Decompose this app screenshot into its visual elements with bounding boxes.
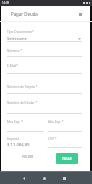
staticText: Año Exp. * — [48, 120, 64, 124]
staticText: Pagar Deuda — [11, 11, 38, 17]
staticText: Número * — [7, 49, 22, 53]
staticText: CVV * — [48, 137, 57, 141]
staticText: Importe — [7, 137, 20, 141]
staticText: Mes Exp. * — [7, 120, 23, 124]
staticText: E-Mail* — [7, 64, 18, 68]
staticText: Seleccione — [7, 36, 27, 41]
button[interactable]: PAGAR — [56, 153, 78, 164]
button[interactable] — [48, 136, 82, 148]
button[interactable]: Menu — [77, 11, 83, 17]
staticText: $ 11.084,89 — [7, 142, 30, 148]
button[interactable] — [7, 47, 82, 57]
button[interactable]: Recents — [59, 173, 69, 183]
button[interactable]: Home — [39, 173, 49, 183]
button[interactable] — [7, 99, 82, 114]
staticText: Tipo Documento* — [7, 30, 34, 34]
button[interactable] — [48, 119, 82, 132]
button[interactable] — [7, 62, 82, 74]
button[interactable] — [7, 28, 82, 42]
staticText: PAGAR — [62, 157, 72, 161]
staticText: Número de Tarjeta * — [7, 85, 38, 89]
staticText: VOLVER — [22, 155, 34, 159]
staticText: Nombre del titular * — [7, 101, 38, 105]
button[interactable] — [7, 119, 44, 132]
button[interactable]: Back — [19, 173, 29, 183]
button[interactable]: VOLVER — [19, 152, 37, 162]
button[interactable] — [7, 83, 82, 94]
staticText: 14:39 — [2, 1, 10, 5]
